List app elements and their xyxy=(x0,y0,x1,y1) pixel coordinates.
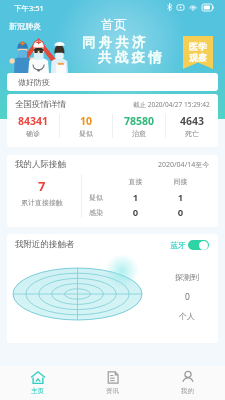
staticText: 78580 xyxy=(124,114,155,128)
staticText: 下午3:51 xyxy=(14,3,44,13)
staticText: 0 xyxy=(113,206,158,219)
staticText: 全国疫情详情 xyxy=(15,99,66,110)
staticText: 7 xyxy=(38,177,46,195)
button[interactable]: 全国疫情详情 xyxy=(7,94,218,147)
staticText: 截止 2020/04/27 15:29:42 xyxy=(133,100,210,109)
button[interactable]: 我的 xyxy=(150,366,225,400)
staticText: 做好防疫 xyxy=(18,77,50,87)
staticText: 0 xyxy=(185,291,190,303)
staticText: 首页 xyxy=(101,16,127,32)
staticText: 我的 xyxy=(181,387,194,395)
staticText: 疑似 xyxy=(89,193,113,202)
staticText: 间接 xyxy=(158,177,203,186)
staticText: 资讯 xyxy=(106,387,119,395)
staticText: 直接 xyxy=(113,177,158,186)
staticText: 探测到 xyxy=(175,272,199,282)
button[interactable]: 我的人际接触 xyxy=(7,155,218,227)
staticText: 新冠肺炎 xyxy=(9,21,41,31)
staticText: 0 xyxy=(158,206,203,219)
button[interactable]: 资讯 xyxy=(75,366,150,400)
staticText: 主页 xyxy=(31,387,44,395)
staticText: 我的人际接触 xyxy=(15,159,66,170)
staticText: 累计直接接触 xyxy=(21,198,63,207)
staticText: 1 xyxy=(158,191,203,204)
staticText: 84341 xyxy=(18,114,49,128)
staticText: 确诊 xyxy=(26,129,40,138)
staticText: 共战疫情 xyxy=(98,49,165,66)
staticText: 死亡 xyxy=(185,129,199,138)
button[interactable]: 医学观察 xyxy=(183,36,213,69)
staticText: 我附近的接触者 xyxy=(15,239,75,250)
staticText: 4643 xyxy=(180,114,205,128)
button[interactable]: 主页 xyxy=(0,366,75,400)
staticText: 感染 xyxy=(89,208,113,217)
staticText: 观察 xyxy=(189,52,207,63)
staticText: 治愈 xyxy=(132,129,146,138)
staticText: 1 xyxy=(113,191,158,204)
staticText: 2020/04/14至今 xyxy=(158,160,210,170)
staticText: 同舟共济 xyxy=(82,34,149,51)
staticText: 疑似 xyxy=(79,129,93,138)
staticText: 医学 xyxy=(189,41,207,52)
staticText: 蓝牙 xyxy=(170,240,186,250)
staticText: 10 xyxy=(80,114,93,128)
button[interactable]: 蓝牙开关 xyxy=(188,240,209,250)
button[interactable]: 做好防疫 xyxy=(7,73,218,91)
staticText: 个人 xyxy=(179,311,195,321)
